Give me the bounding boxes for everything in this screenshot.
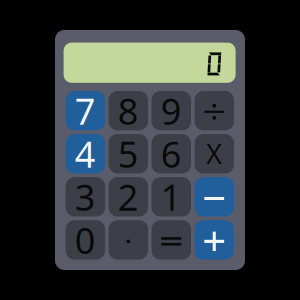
staticText: 6 xyxy=(161,130,182,178)
staticText: X xyxy=(206,136,222,171)
button[interactable]: 2 xyxy=(109,177,148,216)
button[interactable]: 8 xyxy=(109,91,148,130)
button[interactable]: 1 xyxy=(151,177,191,216)
button[interactable]: 9 xyxy=(151,91,191,130)
staticText: 1 xyxy=(161,173,182,221)
button[interactable]: Minus xyxy=(194,177,234,216)
button[interactable]: Divide xyxy=(194,91,234,130)
button[interactable]: 0 xyxy=(66,220,105,260)
staticText: 0 xyxy=(75,216,96,264)
button[interactable]: 7 xyxy=(66,91,105,130)
staticText: 8 xyxy=(118,87,139,135)
staticText: 4 xyxy=(75,130,96,178)
button[interactable]: 4 xyxy=(66,134,105,173)
button[interactable]: X xyxy=(194,134,234,173)
staticText: 9 xyxy=(161,87,182,135)
staticText: 3 xyxy=(75,173,96,221)
staticText: 2 xyxy=(118,173,139,221)
button[interactable]: Decimal point xyxy=(109,220,148,260)
staticText: 7 xyxy=(75,87,96,135)
button[interactable]: Equals xyxy=(151,220,191,260)
button[interactable]: 3 xyxy=(66,177,105,216)
button[interactable]: 6 xyxy=(151,134,191,173)
button[interactable]: Plus xyxy=(194,220,234,260)
button[interactable]: 5 xyxy=(109,134,148,173)
staticText: 5 xyxy=(118,130,139,178)
